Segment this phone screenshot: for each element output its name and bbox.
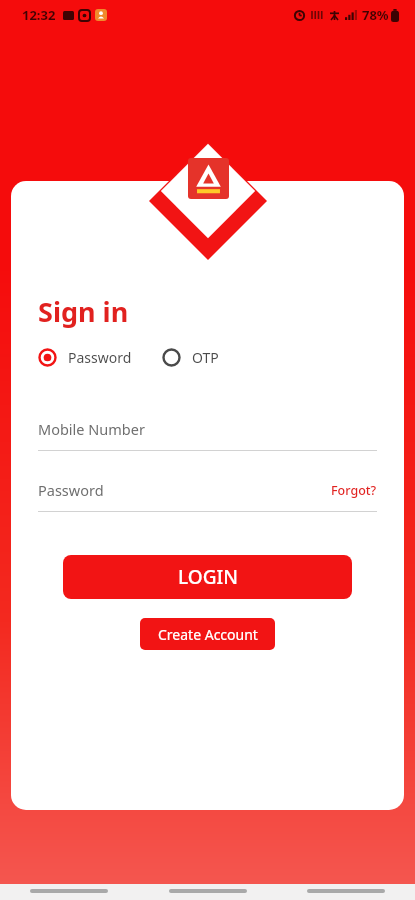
button[interactable]: Forgot? [331, 482, 377, 499]
other: Navigation [169, 889, 247, 893]
staticText: 12:32 [22, 6, 56, 24]
staticText: Create Account [158, 625, 258, 644]
button[interactable]: Password [38, 480, 377, 512]
button[interactable]: OTP [162, 346, 219, 369]
other: App logo [188, 158, 229, 199]
button[interactable]: LOGIN [63, 555, 352, 599]
button[interactable]: Mobile Number [38, 419, 377, 451]
staticText: LOGIN [178, 564, 238, 590]
staticText: Password [68, 348, 132, 367]
staticText: 78% [362, 6, 389, 24]
other: Navigation [307, 889, 385, 893]
other: Navigation [30, 889, 108, 893]
staticText: OTP [192, 348, 219, 367]
staticText: Password [38, 480, 104, 500]
staticText: Mobile Number [38, 419, 145, 439]
button[interactable]: Password [38, 346, 132, 369]
staticText: Sign in [38, 293, 129, 330]
button[interactable]: Create Account [140, 618, 275, 650]
